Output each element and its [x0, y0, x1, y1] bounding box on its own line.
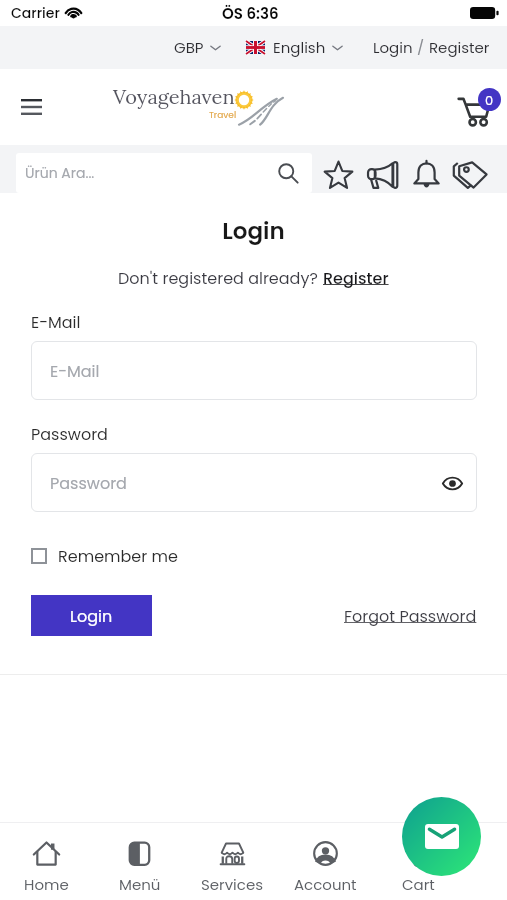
button[interactable]: Menu	[13, 91, 50, 123]
button[interactable]: Campaigns	[361, 154, 405, 196]
staticText: Account	[294, 874, 357, 895]
button[interactable]: English	[242, 31, 347, 64]
staticText: Login	[0, 215, 507, 247]
button[interactable]: Cart	[372, 823, 465, 895]
staticText: Login	[70, 605, 113, 627]
staticText: Carrier	[11, 3, 60, 23]
staticText: Travel	[209, 109, 237, 122]
staticText: Ürün Ara...	[25, 163, 95, 183]
staticText: Remember me	[58, 545, 178, 567]
other: Search	[276, 161, 300, 185]
staticText: GBP	[174, 37, 204, 58]
button[interactable]: Login	[31, 595, 152, 636]
button[interactable]: Login	[369, 31, 494, 64]
button[interactable]: Services	[186, 823, 279, 895]
staticText: Home	[24, 874, 69, 895]
button[interactable]: Ürün Ara...	[16, 153, 312, 193]
staticText: Menü	[119, 874, 161, 895]
button[interactable]: E-Mail	[31, 341, 477, 400]
staticText: Password	[50, 472, 127, 494]
button[interactable]: Home	[0, 823, 93, 895]
staticText: ÖS 6:36	[222, 3, 279, 24]
staticText: Services	[201, 874, 264, 895]
button[interactable]: Messages	[402, 797, 481, 876]
button[interactable]: Show password	[439, 470, 465, 496]
button[interactable]: Cart	[451, 81, 507, 137]
staticText: Cart	[402, 874, 435, 895]
button[interactable]: Favourites	[316, 154, 360, 196]
staticText: Don't registered already?	[118, 267, 323, 289]
staticText: Voyagehaven	[113, 84, 235, 110]
staticText: Register	[429, 37, 490, 58]
button[interactable]: Password	[31, 453, 477, 512]
staticText: E-Mail	[31, 311, 81, 333]
button[interactable]: Account	[279, 823, 372, 895]
staticText: Password	[31, 423, 108, 445]
button[interactable]: Menü	[93, 823, 186, 895]
button[interactable]: Register	[323, 267, 389, 289]
button[interactable]: Notifications	[404, 154, 448, 196]
button[interactable]: GBP	[170, 31, 225, 64]
staticText: English	[273, 37, 326, 58]
button[interactable]: Remember me	[31, 545, 178, 567]
staticText: /	[413, 37, 429, 58]
button[interactable]: Offers	[448, 154, 492, 196]
staticText: Login	[373, 37, 413, 58]
staticText: E-Mail	[50, 360, 100, 382]
button[interactable]: Forgot Password	[344, 605, 477, 627]
staticText: 0	[485, 91, 494, 109]
